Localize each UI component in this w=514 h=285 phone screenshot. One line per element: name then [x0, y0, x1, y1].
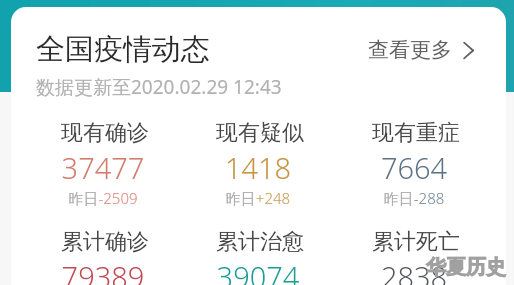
staticText: 全国疫情动态: [36, 31, 210, 68]
button[interactable]: 现有疑似: [140, 119, 380, 214]
other: View more: [463, 42, 474, 59]
staticText: 7664: [294, 148, 506, 187]
staticText: 37477: [11, 148, 223, 187]
staticText: 昨日-2509: [11, 188, 223, 208]
staticText: 累计确诊: [11, 228, 225, 256]
staticText: 累计死亡: [296, 228, 506, 256]
button[interactable]: 查看更多: [368, 37, 474, 63]
button[interactable]: 现有确诊: [11, 119, 225, 214]
staticText: 昨日-288: [294, 188, 506, 208]
staticText: 1418: [138, 148, 378, 187]
button[interactable]: 累计死亡: [296, 228, 506, 285]
button[interactable]: 累计治愈: [140, 228, 380, 285]
staticText: 累计治愈: [140, 228, 380, 256]
staticText: 现有确诊: [11, 119, 225, 147]
staticText: 现有重症: [296, 119, 506, 147]
staticText: 现有疑似: [140, 119, 380, 147]
staticText: 79389: [11, 257, 223, 285]
staticText: 39074: [138, 257, 378, 285]
staticText: 昨日+248: [138, 188, 378, 208]
staticText: 查看更多: [368, 37, 452, 63]
button[interactable]: 现有重症: [296, 119, 506, 214]
button[interactable]: 累计确诊: [11, 228, 225, 285]
staticText: 2838: [294, 257, 506, 285]
staticText: 华夏历史: [426, 255, 506, 280]
staticText: 数据更新至2020.02.29 12:43: [36, 74, 282, 100]
